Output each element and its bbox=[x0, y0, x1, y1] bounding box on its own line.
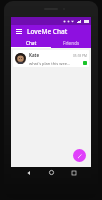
button[interactable]: Kate bbox=[13, 50, 89, 67]
button[interactable]: Friends bbox=[51, 38, 91, 47]
staticText: 05:18 PM bbox=[73, 54, 87, 58]
staticText: what's plan this weekend? bbox=[29, 61, 71, 66]
staticText: Chat bbox=[26, 40, 37, 46]
button[interactable]: Recent apps bbox=[68, 167, 79, 178]
button[interactable]: New chat bbox=[73, 149, 86, 162]
staticText: Friends bbox=[63, 40, 80, 46]
button[interactable]: Home bbox=[46, 167, 57, 178]
staticText: Kate bbox=[29, 52, 40, 58]
button[interactable]: Open navigation drawer bbox=[14, 27, 23, 36]
button[interactable]: Back bbox=[23, 167, 34, 178]
button[interactable]: Chat bbox=[11, 38, 51, 47]
staticText: LoveMe Chat bbox=[27, 27, 68, 36]
